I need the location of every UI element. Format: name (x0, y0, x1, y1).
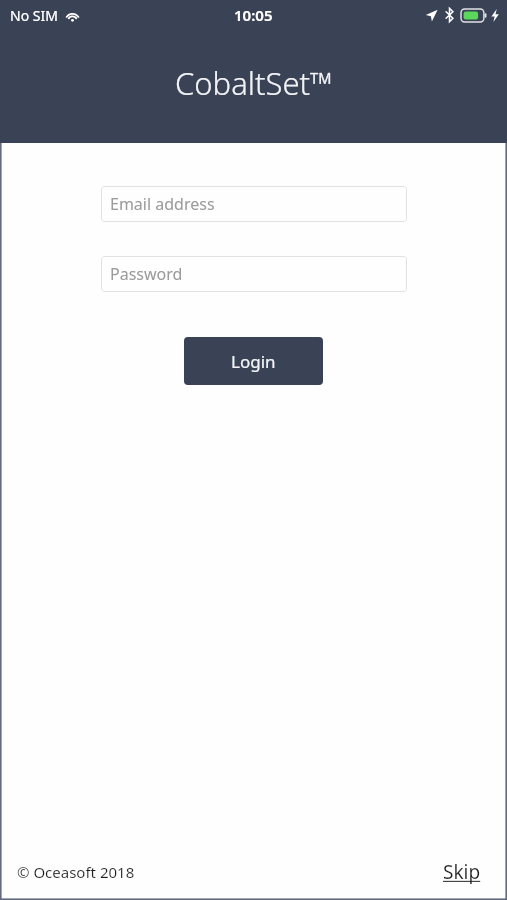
staticText: 10:05 (234, 5, 273, 25)
staticText: © Oceasoft 2018 (17, 862, 135, 882)
button[interactable]: Email address (101, 186, 407, 222)
staticText: Login (231, 350, 276, 373)
staticText: Password (110, 263, 183, 285)
staticText: No SIM (10, 6, 58, 25)
staticText: Email address (110, 193, 215, 215)
button[interactable]: Password (101, 256, 407, 292)
button[interactable]: Skip (441, 855, 483, 889)
staticText: CobaltSet™ (175, 62, 333, 104)
button[interactable]: Login (184, 337, 323, 385)
staticText: Skip (443, 859, 481, 885)
